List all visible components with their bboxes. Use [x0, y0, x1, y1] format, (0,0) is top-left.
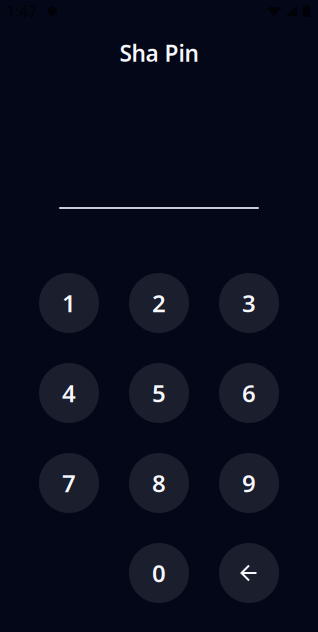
button[interactable]: 0	[129, 543, 189, 603]
button[interactable]: 6	[219, 363, 279, 423]
button[interactable]: 7	[39, 453, 99, 513]
staticText: 0	[152, 557, 166, 589]
button[interactable]: 3	[219, 273, 279, 333]
button[interactable]: Delete	[219, 543, 279, 603]
staticText: Sha Pin	[119, 38, 198, 68]
staticText: 6	[242, 377, 256, 409]
staticText: 4	[62, 377, 76, 409]
staticText: 3	[242, 287, 256, 319]
button[interactable]: 8	[129, 453, 189, 513]
staticText: 9	[242, 467, 256, 499]
button[interactable]: 4	[39, 363, 99, 423]
staticText: 8	[152, 467, 166, 499]
staticText: 1	[62, 287, 76, 319]
staticText: 1:47	[6, 0, 37, 22]
button[interactable]: 2	[129, 273, 189, 333]
staticText: 7	[62, 467, 76, 499]
staticText: 5	[152, 377, 166, 409]
staticText: 2	[152, 287, 166, 319]
button[interactable]: 5	[129, 363, 189, 423]
button[interactable]: 1	[39, 273, 99, 333]
button[interactable]: 9	[219, 453, 279, 513]
